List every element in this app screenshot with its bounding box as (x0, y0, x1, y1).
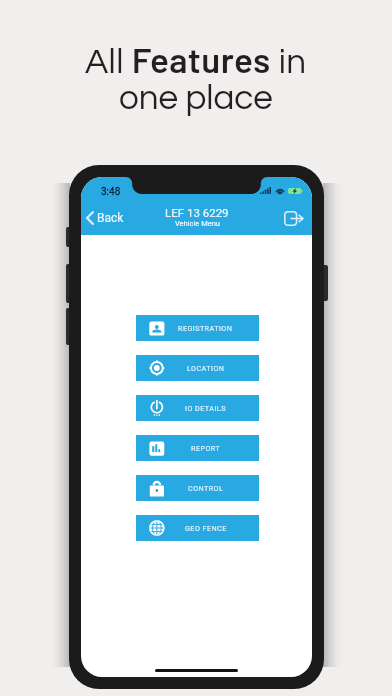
button[interactable]: Back (86, 211, 124, 225)
staticText: CONTROL (188, 484, 224, 492)
button[interactable]: IO DETAILS (136, 395, 259, 421)
button[interactable]: CONTROL (136, 475, 259, 501)
staticText: REGISTRATION (178, 324, 233, 332)
staticText: All Features in (85, 38, 307, 80)
button[interactable]: GEO FENCE (136, 515, 259, 541)
button[interactable]: LOCATION (136, 355, 259, 381)
staticText: one place (119, 80, 273, 116)
button[interactable]: Logout (284, 211, 303, 226)
staticText: Back (97, 211, 124, 225)
staticText: 3:48 (101, 186, 121, 198)
button[interactable]: REGISTRATION (136, 315, 259, 341)
staticText: GEO FENCE (185, 524, 227, 532)
button[interactable]: REPORT (136, 435, 259, 461)
staticText: REPORT (191, 444, 221, 452)
staticText: LEF 13 6229 (165, 206, 229, 219)
staticText: LOCATION (187, 364, 225, 372)
staticText: IO DETAILS (185, 404, 226, 412)
staticText: Vehicle Menu (175, 219, 220, 228)
